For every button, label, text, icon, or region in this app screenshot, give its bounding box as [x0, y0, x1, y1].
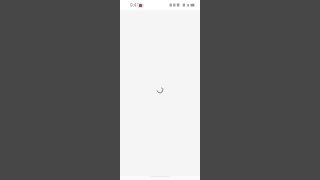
staticText: 9:41 — [130, 2, 140, 8]
button[interactable]: Clock and status chip — [130, 2, 147, 8]
other: System status icons — [169, 0, 195, 10]
button[interactable]: Home gesture handle — [120, 176, 200, 180]
other: Loading — [154, 84, 166, 96]
